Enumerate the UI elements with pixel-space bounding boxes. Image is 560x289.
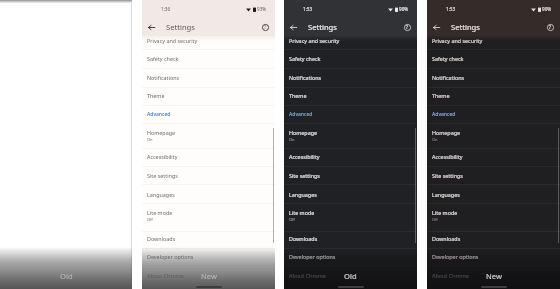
staticText: Lite mode	[289, 209, 315, 216]
button[interactable]	[284, 166, 417, 184]
button[interactable]	[427, 123, 560, 148]
button[interactable]	[284, 87, 417, 106]
button[interactable]	[284, 49, 417, 68]
staticText: Privacy and security	[147, 37, 198, 44]
staticText: 1:53	[446, 6, 456, 12]
staticText: Safety check	[147, 55, 179, 62]
staticText: New	[201, 271, 217, 281]
button[interactable]	[427, 49, 560, 68]
staticText: Privacy and security	[289, 37, 340, 44]
staticText: Notifications	[289, 74, 322, 81]
button[interactable]	[284, 184, 417, 203]
staticText: Safety check	[289, 55, 321, 62]
button[interactable]	[142, 148, 275, 166]
button[interactable]	[427, 68, 560, 86]
button[interactable]	[284, 68, 417, 86]
staticText: Homepage	[432, 129, 461, 136]
button[interactable]	[427, 231, 560, 248]
button[interactable]	[284, 203, 417, 231]
button[interactable]	[284, 248, 417, 265]
staticText: About Chrome	[289, 272, 326, 279]
staticText: ?	[406, 24, 408, 30]
button[interactable]	[142, 265, 275, 289]
staticText: On	[432, 137, 438, 142]
staticText: 93%	[257, 6, 267, 12]
staticText: Languages	[432, 191, 460, 198]
staticText: Advanced	[289, 111, 313, 118]
button[interactable]: Back	[286, 20, 300, 34]
button[interactable]	[142, 49, 275, 68]
button[interactable]	[142, 68, 275, 86]
staticText: Theme	[147, 92, 165, 99]
staticText: Languages	[289, 191, 317, 198]
button[interactable]: Back	[429, 20, 443, 34]
staticText: About Chrome	[147, 272, 184, 279]
staticText: Developer options	[147, 253, 194, 260]
button[interactable]	[142, 203, 275, 231]
button[interactable]	[427, 36, 560, 49]
staticText: Advanced	[432, 111, 456, 118]
staticText: 1:36	[161, 6, 171, 12]
staticText: Advanced	[147, 111, 171, 118]
button[interactable]	[142, 248, 275, 265]
staticText: Downloads	[432, 235, 461, 242]
staticText: About Chrome	[432, 272, 469, 279]
button[interactable]	[142, 166, 275, 184]
staticText: Homepage	[147, 129, 176, 136]
staticText: On	[147, 137, 153, 142]
button[interactable]	[142, 123, 275, 148]
button[interactable]	[284, 265, 417, 289]
button[interactable]	[284, 36, 417, 49]
staticText: Site settings	[147, 172, 178, 179]
staticText: Notifications	[432, 74, 465, 81]
button[interactable]	[427, 148, 560, 166]
staticText: Off	[289, 217, 295, 222]
button[interactable]	[284, 231, 417, 248]
staticText: Languages	[147, 191, 175, 198]
staticText: Site settings	[432, 172, 463, 179]
staticText: Lite mode	[147, 209, 173, 216]
button[interactable]	[427, 105, 560, 123]
staticText: Off	[432, 217, 438, 222]
button[interactable]: Help	[543, 20, 557, 34]
staticText: 1:53	[303, 6, 313, 12]
button[interactable]	[142, 105, 275, 123]
button[interactable]	[427, 203, 560, 231]
staticText: Privacy and security	[432, 37, 483, 44]
staticText: ?	[264, 24, 266, 30]
button[interactable]	[284, 148, 417, 166]
staticText: Old	[344, 271, 357, 281]
button[interactable]	[284, 105, 417, 123]
button[interactable]	[142, 231, 275, 248]
staticText: Settings	[166, 22, 195, 32]
staticText: Old	[60, 271, 73, 281]
button[interactable]	[142, 184, 275, 203]
staticText: Settings	[308, 22, 337, 32]
staticText: Off	[147, 217, 153, 222]
button[interactable]	[142, 36, 275, 49]
button[interactable]	[427, 265, 560, 289]
staticText: Notifications	[147, 74, 180, 81]
staticText: Developer options	[289, 253, 336, 260]
staticText: Accessibility	[289, 153, 320, 160]
button[interactable]	[427, 184, 560, 203]
staticText: Theme	[432, 92, 450, 99]
staticText: Site settings	[289, 172, 320, 179]
button[interactable]	[142, 87, 275, 106]
staticText: Accessibility	[147, 153, 178, 160]
staticText: Safety check	[432, 55, 464, 62]
button[interactable]	[427, 248, 560, 265]
staticText: Lite mode	[432, 209, 458, 216]
button[interactable]: Back	[144, 20, 158, 34]
staticText: Developer options	[432, 253, 479, 260]
staticText: 90%	[542, 6, 552, 12]
button[interactable]	[284, 123, 417, 148]
staticText: New	[486, 271, 502, 281]
button[interactable]	[427, 87, 560, 106]
staticText: On	[289, 137, 295, 142]
staticText: Downloads	[289, 235, 318, 242]
button[interactable]: Help	[400, 20, 414, 34]
staticText: Downloads	[147, 235, 176, 242]
button[interactable]: Help	[258, 20, 272, 34]
button[interactable]	[427, 166, 560, 184]
